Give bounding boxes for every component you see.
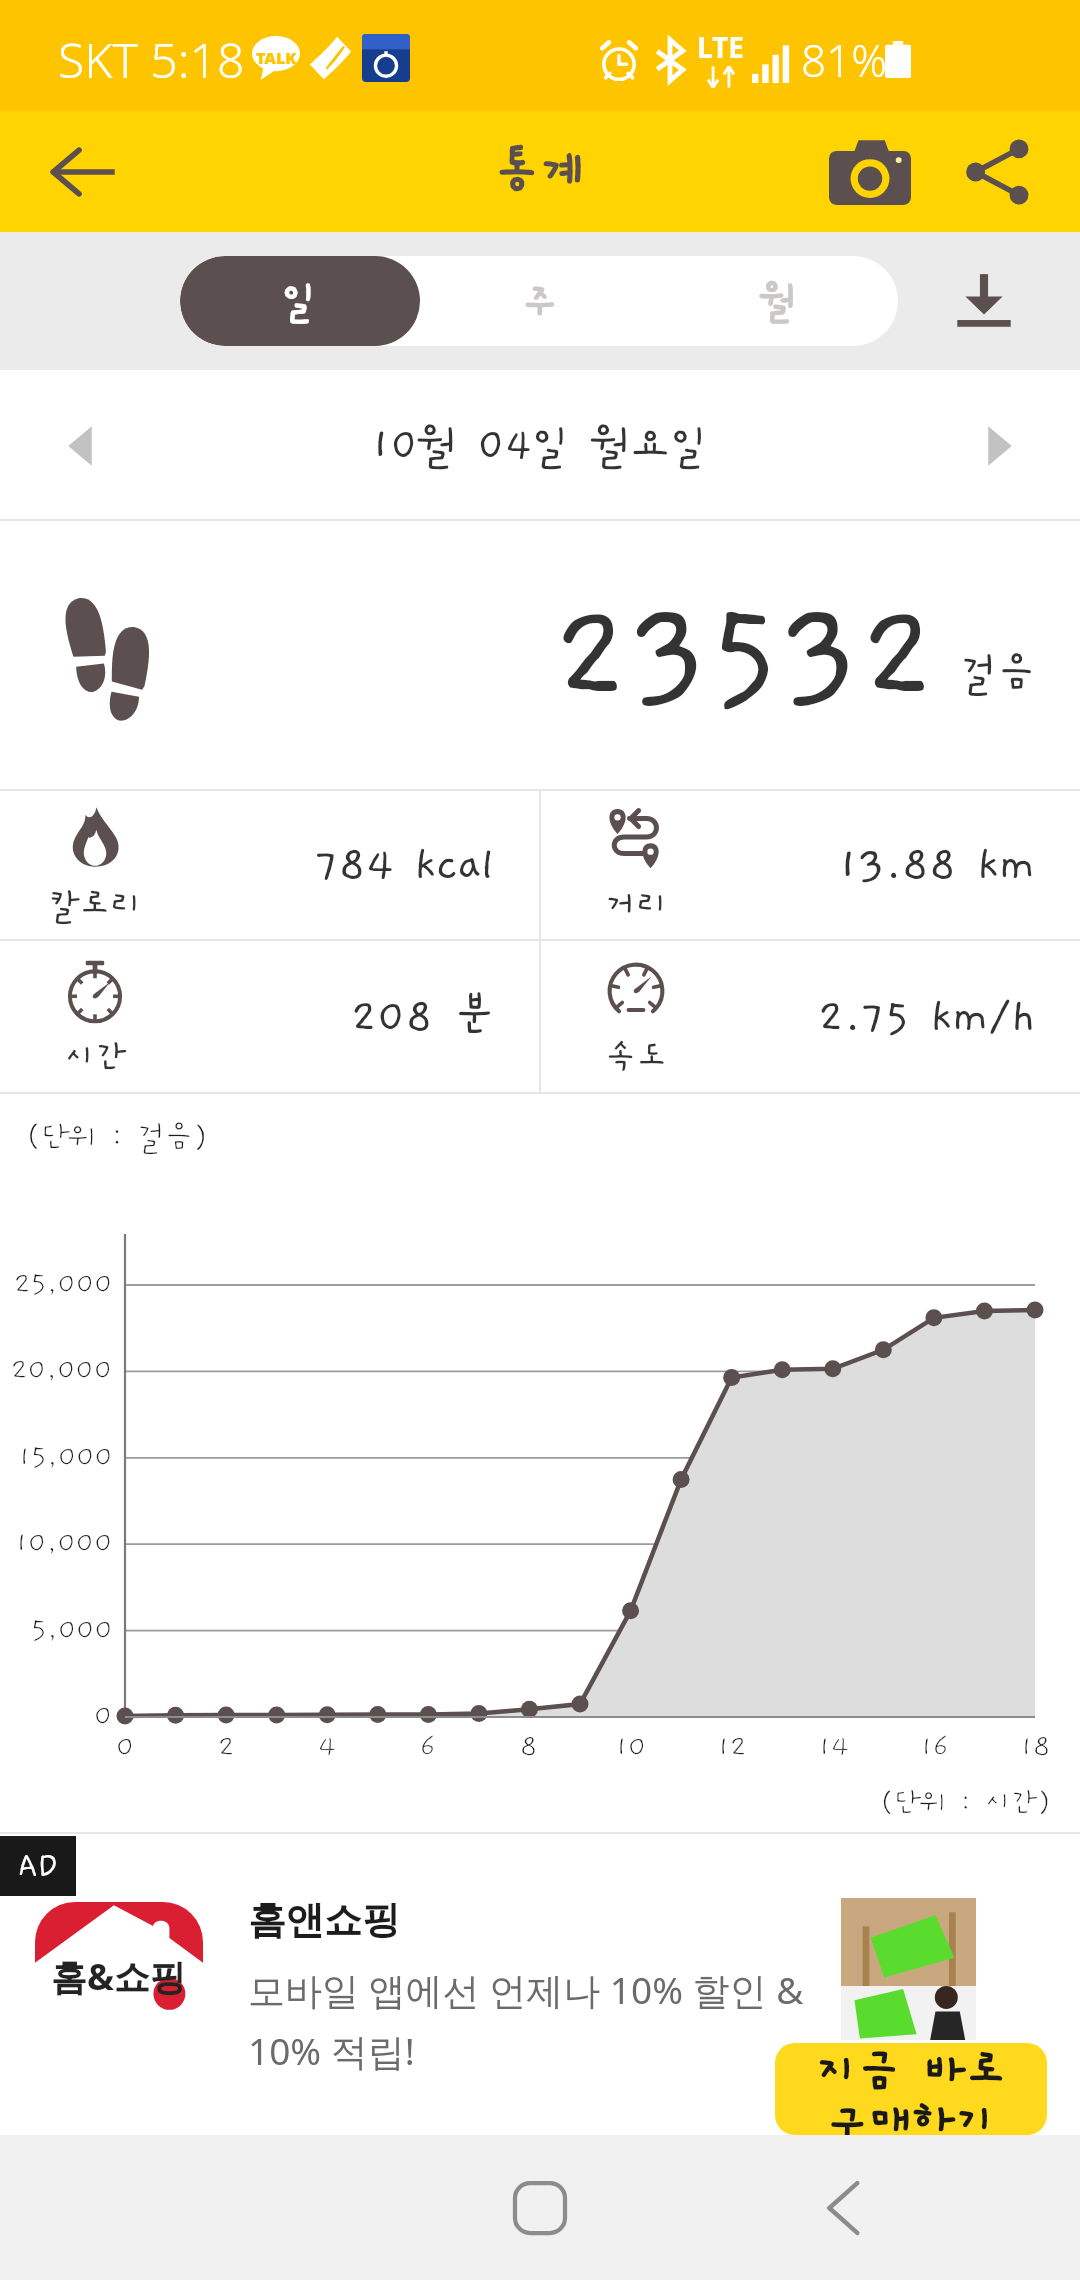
button[interactable]: Previous day	[0, 370, 160, 521]
button[interactable]: Camera	[805, 111, 935, 232]
staticText: (단위 : 시간)	[880, 1787, 1052, 1819]
button[interactable]: Back	[783, 2148, 903, 2268]
staticText: 월	[760, 278, 798, 324]
staticText: 23532	[553, 582, 938, 730]
staticText: 10월 04일 월요일	[371, 422, 710, 470]
staticText: 2.75 km/h	[818, 992, 1036, 1042]
staticText: 10,000	[15, 1527, 113, 1559]
staticText: 6	[420, 1731, 436, 1763]
button[interactable]: AD	[0, 1834, 1080, 2135]
staticText: 0	[116, 1731, 135, 1763]
staticText: TALK	[256, 47, 297, 69]
button[interactable]: 시간	[0, 941, 539, 1092]
staticText: 0	[94, 1700, 113, 1732]
button[interactable]: 거리	[541, 791, 1080, 939]
staticText: 속도	[605, 1038, 668, 1076]
button[interactable]: 월	[659, 256, 898, 346]
staticText: 일	[281, 278, 319, 324]
button[interactable]: Home	[480, 2148, 600, 2268]
staticText: 25,000	[14, 1268, 113, 1300]
button[interactable]: 지금 바로	[775, 2043, 1047, 2135]
staticText: (단위 : 걸음)	[26, 1120, 208, 1154]
staticText: 18	[1020, 1731, 1051, 1763]
staticText: 15,000	[18, 1441, 113, 1473]
staticText: 10	[615, 1731, 647, 1763]
staticText: 홈앤쇼핑	[248, 1896, 400, 1944]
button[interactable]: Back	[0, 111, 166, 232]
staticText: 14	[818, 1731, 849, 1763]
staticText: SKT 5:18	[58, 27, 245, 92]
staticText: 81%	[801, 30, 887, 90]
staticText: 주	[521, 278, 559, 324]
staticText: 16	[920, 1731, 949, 1763]
staticText: 20,000	[11, 1354, 113, 1386]
staticText: LTE	[697, 28, 744, 66]
staticText: 4	[318, 1731, 336, 1763]
button[interactable]: 속도	[541, 941, 1080, 1092]
button[interactable]: 일	[180, 256, 420, 346]
staticText: 2	[218, 1731, 235, 1763]
staticText: 걸음	[960, 650, 1036, 696]
staticText: 홈&쇼핑	[51, 1952, 187, 2001]
staticText: 구매하기	[826, 2095, 997, 2135]
button[interactable]: Share	[938, 111, 1058, 232]
staticText: 208 분	[351, 992, 495, 1042]
staticText: 13.88 km	[838, 840, 1036, 890]
staticText: 모바일 앱에선 언제나 10% 할인 &	[248, 1964, 804, 2015]
staticText: AD	[18, 1848, 58, 1884]
staticText: 10% 적립!	[248, 2025, 415, 2076]
staticText: 12	[717, 1731, 747, 1763]
button[interactable]: 칼로리	[0, 791, 539, 939]
staticText: 시간	[64, 1038, 127, 1076]
staticText: 784 kcal	[315, 840, 495, 890]
staticText: 거리	[605, 886, 668, 924]
staticText: 칼로리	[48, 886, 142, 924]
staticText: 통계	[494, 144, 586, 200]
button[interactable]: Download	[934, 251, 1034, 351]
button[interactable]: 주	[420, 256, 659, 346]
staticText: 지금 바로	[815, 2045, 1008, 2097]
staticText: 8	[520, 1731, 538, 1763]
button[interactable]: Next day	[920, 370, 1080, 521]
staticText: 5,000	[31, 1614, 113, 1646]
